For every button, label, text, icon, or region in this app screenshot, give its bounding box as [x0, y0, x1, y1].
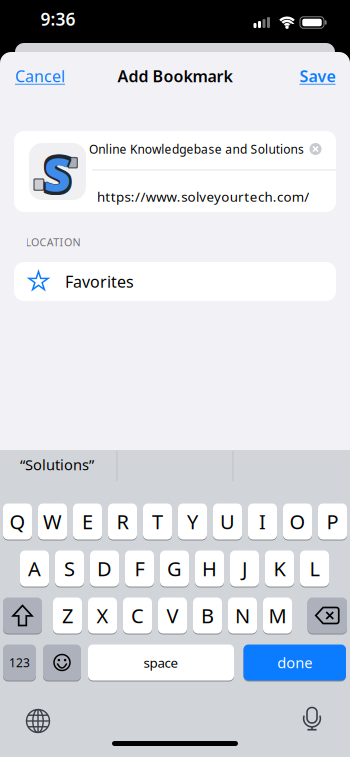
button[interactable]: space — [88, 644, 234, 681]
staticText: Q — [9, 508, 25, 535]
staticText: L — [309, 555, 319, 582]
staticText: Add Bookmark — [117, 65, 232, 87]
button[interactable]: O — [283, 503, 312, 540]
button[interactable]: Cancel — [5, 61, 75, 91]
staticText: P — [326, 508, 338, 535]
staticText: Favorites — [65, 271, 134, 292]
staticText: 123 — [9, 654, 30, 670]
staticText: V — [166, 602, 178, 629]
staticText: H — [202, 555, 217, 582]
staticText: “Solutions” — [20, 455, 94, 474]
staticText: J — [242, 555, 247, 582]
staticText: N — [235, 602, 250, 629]
staticText: done — [277, 653, 312, 672]
button[interactable]: E — [73, 503, 102, 540]
button[interactable]: Clear text — [307, 141, 323, 157]
staticText: A — [28, 555, 41, 582]
staticText: M — [268, 602, 286, 629]
button[interactable]: T — [143, 503, 172, 540]
button[interactable]: J — [230, 550, 259, 587]
button[interactable]: Favorites — [14, 262, 336, 301]
staticText: Y — [187, 508, 198, 535]
button[interactable]: Q — [3, 503, 32, 540]
staticText: LOCATION — [26, 235, 80, 249]
button[interactable]: F — [125, 550, 154, 587]
button[interactable]: Shift — [3, 597, 42, 634]
button[interactable]: M — [263, 597, 292, 634]
staticText: S — [41, 141, 70, 209]
button[interactable]: G — [160, 550, 189, 587]
staticText: O — [289, 508, 305, 535]
button[interactable]: I — [248, 503, 277, 540]
staticText: E — [82, 508, 93, 535]
staticText: B — [201, 602, 214, 629]
button[interactable]: L — [300, 550, 329, 587]
staticText: Save — [299, 65, 335, 87]
staticText: F — [134, 555, 144, 582]
button[interactable]: 123 — [3, 644, 36, 681]
button[interactable]: A — [20, 550, 49, 587]
staticText: U — [220, 508, 235, 535]
staticText: S — [41, 139, 70, 206]
staticText: W — [43, 508, 62, 535]
button[interactable]: K — [265, 550, 294, 587]
staticText: Online Knowledgebase and Solutions — [89, 141, 304, 157]
staticText: Cancel — [15, 65, 65, 87]
staticText: S — [44, 139, 73, 206]
button[interactable]: Emoji — [43, 644, 81, 681]
button[interactable]: Next keyboard — [26, 709, 49, 732]
button[interactable]: “Solutions” — [20, 449, 130, 479]
button[interactable]: done — [243, 644, 346, 681]
button[interactable]: B — [193, 597, 222, 634]
staticText: space — [143, 654, 178, 671]
button[interactable]: S — [55, 550, 84, 587]
staticText: S — [44, 143, 71, 205]
staticText: Z — [62, 602, 73, 629]
button[interactable]: U — [213, 503, 242, 540]
button[interactable]: Dictate — [301, 706, 322, 731]
staticText: G — [167, 555, 182, 582]
staticText: https://www.solveyourtech.com/ — [97, 188, 309, 205]
button[interactable]: Z — [53, 597, 82, 634]
button[interactable]: D — [90, 550, 119, 587]
button[interactable]: X — [88, 597, 117, 634]
button[interactable]: Save — [290, 61, 344, 91]
staticText: D — [97, 555, 112, 582]
staticText: 9:36 — [40, 7, 75, 30]
staticText: S — [64, 555, 75, 582]
staticText: I — [259, 508, 266, 535]
button[interactable]: P — [318, 503, 347, 540]
button[interactable]: R — [108, 503, 137, 540]
button[interactable]: H — [195, 550, 224, 587]
staticText: X — [96, 602, 108, 629]
staticText: T — [152, 508, 163, 535]
button[interactable]: V — [158, 597, 187, 634]
button[interactable]: C — [123, 597, 152, 634]
staticText: S — [44, 141, 73, 209]
staticText: C — [131, 602, 144, 629]
button[interactable]: W — [38, 503, 67, 540]
staticText: R — [116, 508, 128, 535]
button[interactable]: N — [228, 597, 257, 634]
button[interactable]: Y — [178, 503, 207, 540]
button[interactable]: Delete — [307, 597, 347, 634]
staticText: K — [273, 555, 285, 582]
